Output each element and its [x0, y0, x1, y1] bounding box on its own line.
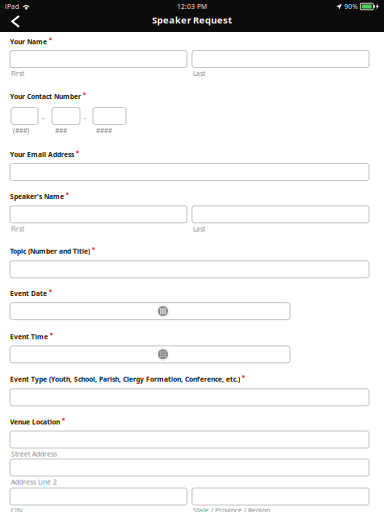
staticText: Street Address [11, 449, 57, 458]
staticText: Speaker Request [152, 14, 232, 26]
staticText: (###) [13, 126, 29, 135]
staticText: City [11, 506, 22, 512]
staticText: iPad [5, 2, 19, 11]
button[interactable]: Topic (Number and Title) [10, 261, 369, 278]
staticText: First [11, 69, 24, 78]
button[interactable]: State / Province / Region [192, 488, 369, 505]
button[interactable]: Prefix [52, 107, 80, 124]
staticText: First [11, 224, 24, 233]
button[interactable]: Speaker's Name First [10, 206, 187, 223]
button[interactable]: Your Name First [10, 50, 187, 67]
staticText: Event Type (Youth, School, Parish, Clerg… [10, 375, 240, 384]
button[interactable]: City [10, 488, 187, 505]
staticText: State / Province / Region [193, 506, 270, 512]
button[interactable]: Area code [11, 107, 38, 124]
staticText: Last [193, 224, 205, 233]
button[interactable]: Back [0, 15, 29, 30]
button[interactable]: Event Date [10, 303, 290, 320]
staticText: Event Time [10, 332, 48, 341]
staticText: 12:03 PM [177, 2, 207, 11]
staticText: 90% [344, 2, 358, 11]
button[interactable]: Street Address [10, 431, 369, 448]
button[interactable]: Address Line 2 [10, 459, 369, 476]
staticText: - [42, 113, 44, 122]
button[interactable]: Line number [93, 107, 126, 124]
staticText: Event Date [10, 289, 47, 298]
staticText: Your Email Address [10, 150, 74, 159]
staticText: Venue Location [10, 417, 60, 426]
staticText: Your Name [10, 37, 47, 46]
staticText: - [84, 113, 86, 122]
button[interactable]: Event Type (Youth, School, Parish, Clerg… [10, 389, 369, 406]
staticText: Last [193, 69, 205, 78]
staticText: Address Line 2 [11, 477, 57, 486]
staticText: ### [55, 126, 67, 135]
staticText: Topic (Number and Title) [10, 247, 90, 256]
button[interactable]: Speaker's Name Last [192, 206, 369, 223]
button[interactable]: Your Name Last [192, 50, 369, 67]
staticText: Speaker's Name [10, 192, 64, 201]
staticText: Your Contact Number [10, 92, 81, 101]
staticText: #### [96, 126, 112, 135]
button[interactable]: Event Time [10, 346, 290, 363]
